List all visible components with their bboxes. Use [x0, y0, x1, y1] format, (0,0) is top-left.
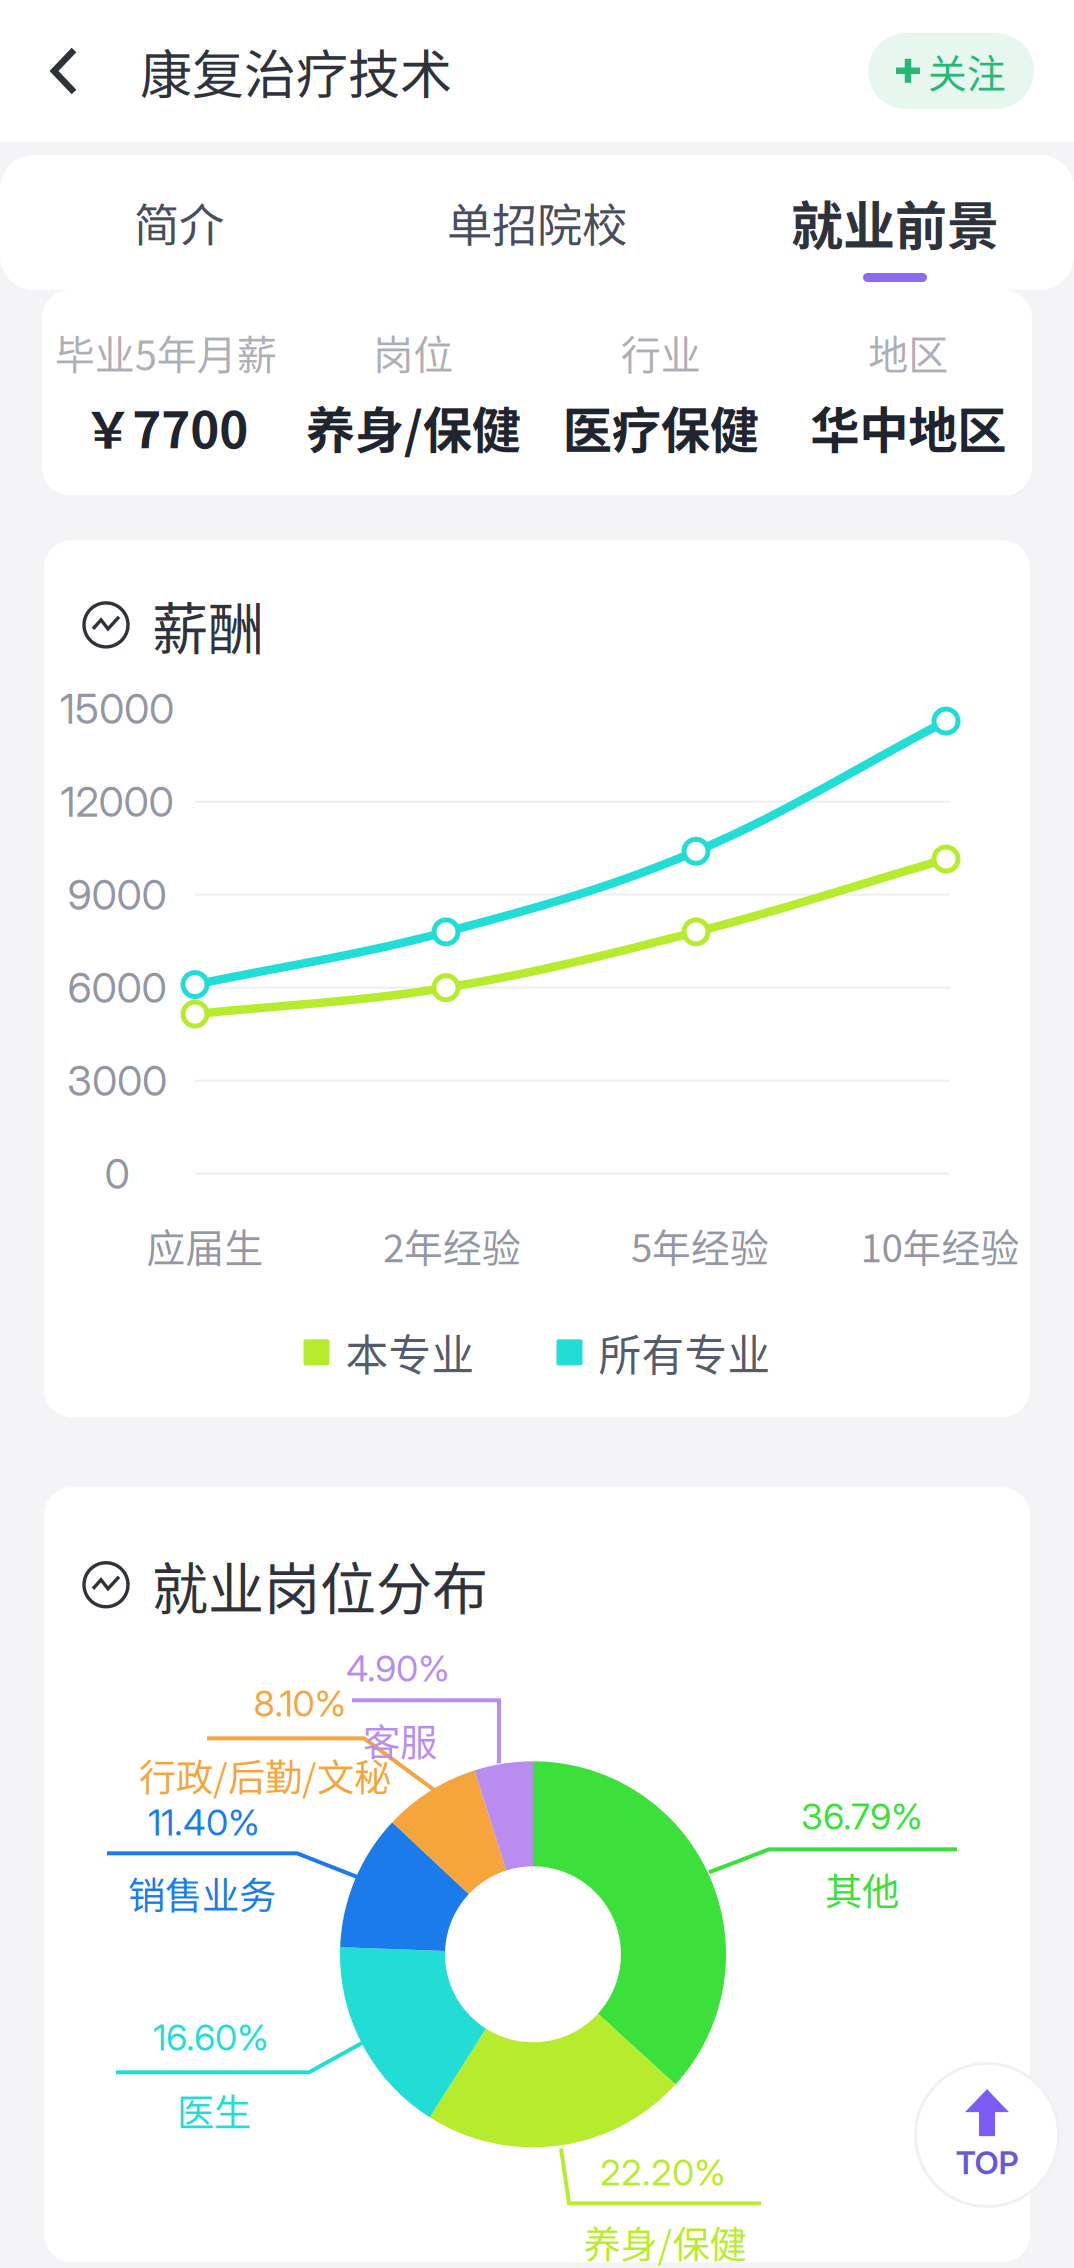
staticText: 2年经验 [383, 1217, 521, 1273]
staticText: 16.60% [153, 2015, 269, 2059]
staticText: 养身/保健 [306, 391, 521, 462]
staticText: 地区 [868, 323, 948, 381]
staticText: ￥7700 [83, 391, 248, 462]
staticText: 3000 [67, 1056, 167, 1106]
staticText: 6000 [67, 963, 166, 1013]
staticText: 医生 [177, 2083, 251, 2137]
staticText: 华中地区 [810, 391, 1006, 462]
staticText: 11.40% [148, 1800, 260, 1844]
staticText: 10年经验 [860, 1217, 1019, 1273]
staticText: 康复治疗技术 [140, 33, 452, 109]
button[interactable]: 就业前景 [716, 155, 1074, 290]
staticText: 0 [104, 1149, 129, 1199]
staticText: 行业 [621, 323, 701, 381]
staticText: 9000 [67, 870, 166, 920]
staticText: 养身/保健 [583, 2215, 746, 2268]
staticText: 医疗保健 [563, 391, 759, 462]
staticText: 所有专业 [598, 1321, 770, 1383]
staticText: 客服 [363, 1713, 437, 1767]
staticText: 5年经验 [631, 1217, 769, 1273]
staticText: 就业岗位分布 [152, 1544, 488, 1625]
staticText: TOP [955, 2143, 1018, 2182]
staticText: 36.79% [801, 1794, 923, 1838]
button[interactable]: 简介 [0, 155, 358, 290]
staticText: 本专业 [345, 1321, 474, 1383]
button[interactable]: 关注 [868, 33, 1034, 109]
staticText: 岗位 [373, 323, 453, 381]
button[interactable]: 单招院校 [358, 155, 716, 290]
staticText: 毕业5年月薪 [55, 323, 277, 381]
staticText: 行政/后勤/文秘 [139, 1748, 391, 1802]
staticText: 12000 [60, 777, 173, 827]
button[interactable]: Back [0, 0, 120, 142]
staticText: 单招院校 [447, 190, 627, 255]
staticText: 4.90% [346, 1646, 450, 1690]
staticText: 15000 [60, 684, 174, 734]
staticText: 22.20% [600, 2150, 726, 2194]
staticText: 销售业务 [128, 1866, 276, 1920]
staticText: 简介 [134, 190, 224, 255]
staticText: 其他 [825, 1862, 899, 1916]
staticText: 8.10% [253, 1681, 346, 1725]
staticText: 薪酬 [152, 584, 264, 665]
staticText: 就业前景 [791, 185, 999, 260]
staticText: 关注 [928, 43, 1006, 99]
button[interactable]: Back to top [914, 2062, 1060, 2208]
staticText: 应届生 [146, 1217, 263, 1273]
